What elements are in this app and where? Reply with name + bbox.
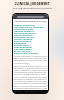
staticText: CLINICAL JUDGEMENT bbox=[14, 2, 50, 6]
staticText: analyse the findings, and identify probl… bbox=[14, 78, 47, 80]
button[interactable]: Priority Setting bbox=[14, 40, 47, 42]
staticText: Documentation bbox=[14, 48, 32, 50]
button[interactable]: Nursing Process Overview bbox=[14, 26, 47, 28]
staticText: Patient Safety bbox=[14, 44, 30, 46]
staticText: Nurses gather subjective and objective d… bbox=[14, 76, 47, 78]
staticText: implementation and evaluation of outcome… bbox=[14, 71, 47, 73]
button[interactable]: Nursing Diagnosis bbox=[14, 30, 47, 32]
button[interactable]: Planning Outcomes bbox=[14, 32, 47, 34]
button[interactable]: Communication bbox=[14, 46, 47, 48]
staticText: Delegation bbox=[14, 42, 27, 44]
staticText: Nursing Process Overview bbox=[14, 26, 44, 28]
staticText: Quality Improvement bbox=[14, 52, 39, 54]
staticText: Critical Thinking bbox=[14, 38, 33, 40]
button[interactable]: Delegation bbox=[14, 42, 47, 44]
staticText: measured against established goals. bbox=[14, 82, 47, 84]
staticText: Nursing Implications & Processes bbox=[14, 20, 47, 23]
staticText: framework that guides practice. It inclu… bbox=[14, 67, 47, 69]
staticText: Implementation bbox=[14, 34, 33, 36]
button[interactable]: Assessment Data bbox=[14, 28, 47, 30]
staticText: Ethics and Law bbox=[14, 50, 31, 52]
staticText: that require intervention. Outcomes are … bbox=[14, 80, 47, 82]
staticText: Nursing Process bbox=[14, 62, 30, 64]
button[interactable]: Implementation bbox=[14, 34, 47, 36]
button[interactable]: Patient Safety bbox=[14, 44, 47, 46]
staticText: assessment data and the best evidence. bbox=[14, 59, 47, 61]
button[interactable]: Quality Improvement bbox=[14, 52, 47, 54]
staticText: Priority Setting bbox=[14, 40, 32, 42]
button[interactable]: Address bar bbox=[13, 14, 48, 19]
staticText: steps: assessment, diagnosis, planning, bbox=[14, 69, 47, 71]
staticText: Communication bbox=[14, 46, 32, 48]
staticText: make decisions about patient care based … bbox=[14, 57, 47, 59]
staticText: for each individual patient in care. bbox=[14, 73, 46, 75]
staticText: Nursing Implications & Processes bbox=[13, 6, 52, 9]
staticText: The nursing process provides a systemati… bbox=[14, 65, 47, 67]
staticText: Clinical Judgement bbox=[14, 24, 36, 26]
button[interactable]: Ethics and Law bbox=[14, 50, 47, 52]
button[interactable]: Documentation bbox=[14, 48, 47, 50]
staticText: Planning Outcomes bbox=[14, 32, 36, 34]
button[interactable]: Clinical Judgement bbox=[14, 24, 47, 26]
button[interactable]: Evaluation of Care bbox=[14, 36, 47, 38]
staticText: Nursing Diagnosis bbox=[14, 30, 35, 32]
staticText: Evaluation of Care bbox=[14, 36, 35, 38]
button[interactable]: Critical Thinking bbox=[14, 38, 47, 40]
staticText: Priority setting helps the nurse decide … bbox=[14, 85, 47, 87]
staticText: Assessment Data bbox=[14, 28, 34, 30]
staticText: Clinical judgement is the process nurses… bbox=[14, 55, 47, 57]
staticText: problems need attention first, using mod… bbox=[14, 87, 47, 89]
